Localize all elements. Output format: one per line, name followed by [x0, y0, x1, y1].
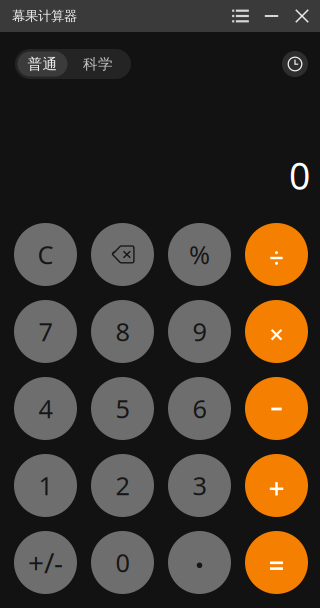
button[interactable]: 7: [14, 300, 77, 363]
button[interactable]: 科学: [67, 51, 128, 76]
staticText: 2: [115, 469, 129, 502]
staticText: 5: [115, 392, 129, 425]
staticText: 科学: [83, 55, 113, 73]
button[interactable]: C: [14, 223, 77, 286]
staticText: 8: [115, 315, 129, 348]
button[interactable]: 3: [168, 454, 231, 517]
staticText: %: [189, 238, 210, 271]
button[interactable]: 普通: [17, 51, 67, 76]
button[interactable]: Close: [287, 0, 317, 32]
button[interactable]: Menu: [225, 0, 256, 32]
button[interactable]: Equals: [245, 531, 308, 594]
button[interactable]: Subtract: [245, 377, 308, 440]
staticText: 9: [192, 315, 206, 348]
button[interactable]: Divide: [245, 223, 308, 286]
button[interactable]: Multiply: [245, 300, 308, 363]
button[interactable]: Minimize: [256, 0, 287, 32]
staticText: 普通: [27, 55, 57, 73]
button[interactable]: Decimal point: [168, 531, 231, 594]
staticText: 6: [192, 392, 206, 425]
button[interactable]: 2: [91, 454, 154, 517]
button[interactable]: 5: [91, 377, 154, 440]
button[interactable]: %: [168, 223, 231, 286]
button[interactable]: History: [282, 51, 308, 77]
staticText: 3: [192, 469, 206, 502]
staticText: 0: [289, 150, 310, 200]
button[interactable]: 9: [168, 300, 231, 363]
button[interactable]: Delete: [91, 223, 154, 286]
staticText: 幕果计算器: [12, 8, 77, 24]
staticText: 1: [38, 469, 52, 502]
staticText: C: [37, 238, 53, 271]
button[interactable]: 8: [91, 300, 154, 363]
button[interactable]: +/-: [14, 531, 77, 594]
staticText: 4: [38, 392, 52, 425]
staticText: 7: [38, 315, 52, 348]
button[interactable]: 4: [14, 377, 77, 440]
staticText: 0: [115, 546, 129, 579]
button[interactable]: 6: [168, 377, 231, 440]
button[interactable]: 1: [14, 454, 77, 517]
button[interactable]: Add: [245, 454, 308, 517]
button[interactable]: 0: [91, 531, 154, 594]
staticText: +/-: [28, 544, 63, 581]
